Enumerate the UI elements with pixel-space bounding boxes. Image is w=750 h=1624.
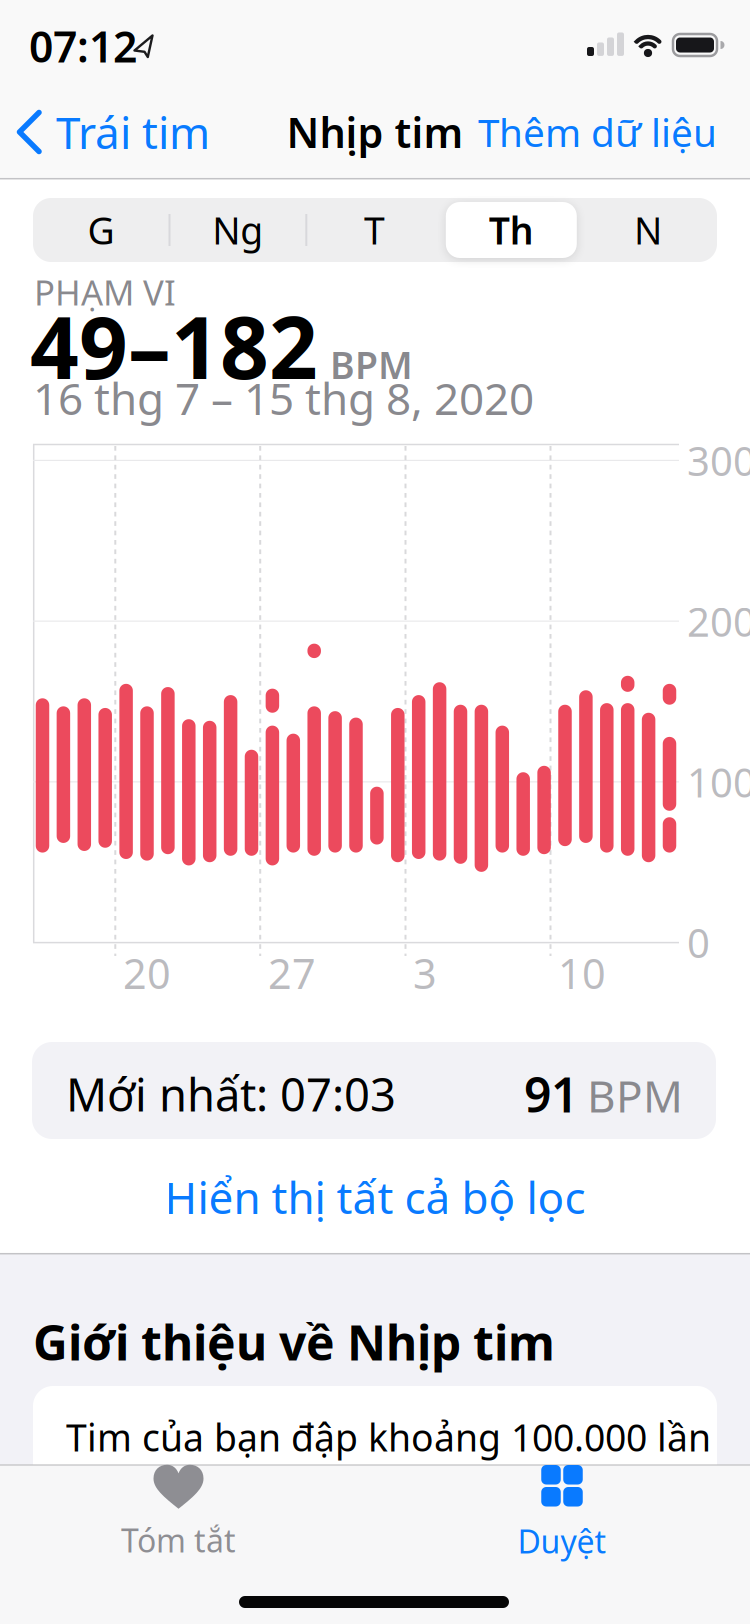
staticText: G [87,205,114,255]
staticText: Mới nhất: 07:03 [66,1064,396,1124]
staticText: Thêm dữ liệu [478,106,717,158]
staticText: 0 [687,916,710,969]
button[interactable]: Th [446,202,577,258]
button[interactable]: T [309,198,439,262]
staticText: Giới thiệu về Nhịp tim [33,1310,555,1374]
staticText: Hiển thị tất cả bộ lọc [164,1168,585,1226]
staticText: 100 [687,755,750,808]
button[interactable]: Thêm dữ liệu [317,106,717,158]
staticText: Ng [212,205,263,255]
staticText: Duyệt [517,1520,606,1562]
staticText: Tim của bạn đập khoảng 100.000 lần [66,1412,711,1462]
button[interactable]: N [583,198,713,262]
staticText: PHẠM VI [34,269,176,315]
staticText: Tóm tắt [121,1519,236,1561]
button[interactable]: Ng [173,198,303,262]
staticText: 07:12 [29,18,137,74]
button[interactable]: Tóm tắt [28,1461,328,1565]
staticText: Trái tim [56,103,210,161]
button[interactable]: G [36,198,166,262]
staticText: 27 [268,946,316,1000]
staticText: N [634,205,662,255]
staticText: BPM [330,340,413,389]
staticText: 200 [687,595,750,648]
button[interactable]: Hiển thị tất cả bộ lọc [164,1168,585,1226]
staticText: BPM [587,1066,683,1125]
staticText: Nhịp tim [286,105,463,159]
staticText: 10 [558,946,606,1000]
staticText: 20 [123,946,171,1000]
staticText: 3 [413,946,437,1000]
staticText: T [364,205,385,255]
staticText: 300 [687,434,750,487]
button[interactable]: Back [16,103,416,161]
staticText: 91 [524,1062,578,1126]
staticText: 16 thg 7 – 15 thg 8, 2020 [33,369,534,427]
button[interactable]: Duyệt [412,1461,712,1565]
staticText: Th [489,205,534,255]
staticText: 49–182 [30,289,318,403]
